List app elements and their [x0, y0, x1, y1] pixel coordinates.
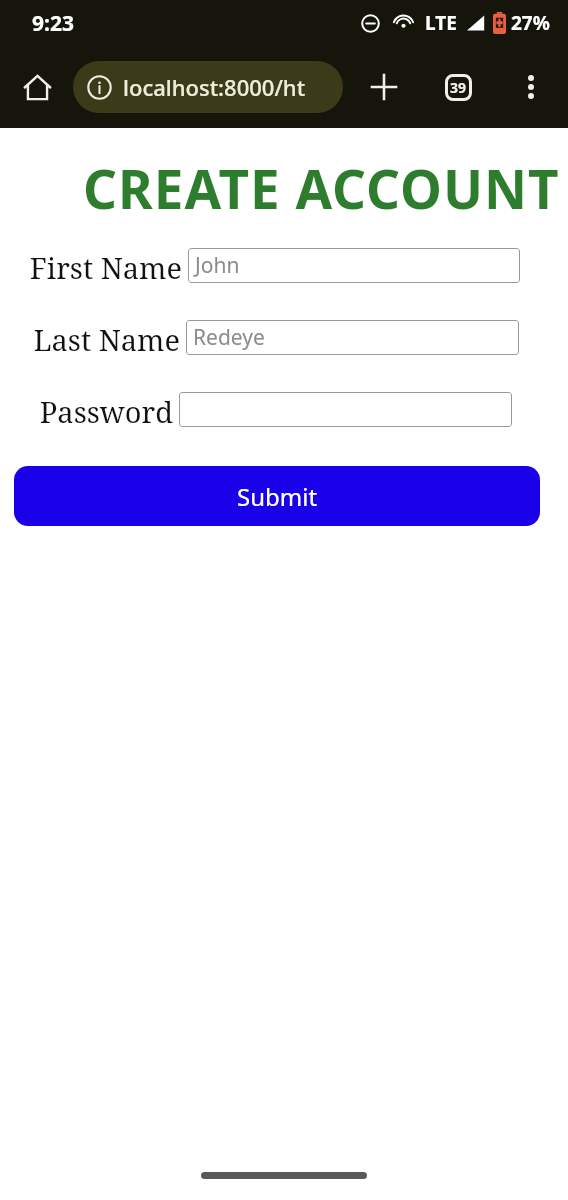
staticText: First Name	[29, 248, 182, 284]
button[interactable]: Redeye	[186, 320, 519, 355]
staticText: CREATE ACCOUNT	[83, 152, 560, 224]
staticText: 9:23	[32, 9, 74, 38]
staticText: Redeye	[193, 323, 265, 352]
button[interactable]: New tab	[361, 64, 407, 110]
staticText: Submit	[237, 480, 318, 513]
staticText: Last Name	[33, 320, 180, 356]
button[interactable]: Home	[14, 64, 60, 110]
staticText: localhost:8000/ht	[123, 72, 306, 102]
staticText: Password	[39, 392, 173, 428]
staticText: 39	[450, 78, 467, 97]
staticText: LTE	[425, 10, 457, 36]
button[interactable]: John	[188, 248, 520, 283]
button[interactable]: Submit	[14, 466, 540, 526]
button[interactable]	[179, 392, 512, 427]
button[interactable]: Tabs, 39 open	[435, 64, 481, 110]
staticText: John	[195, 251, 240, 280]
staticText: 27%	[511, 10, 550, 36]
button[interactable]: More options	[508, 64, 554, 110]
button[interactable]: localhost:8000/ht	[73, 61, 343, 113]
